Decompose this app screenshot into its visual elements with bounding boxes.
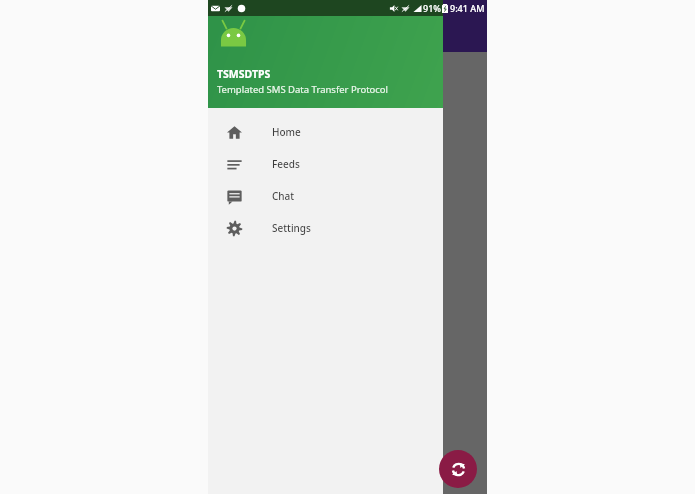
staticText: TSMSDTPS — [217, 67, 271, 81]
staticText: Settings — [272, 221, 311, 235]
staticText: 91% — [423, 2, 441, 14]
staticText: Home — [272, 125, 301, 139]
button[interactable]: Feeds — [208, 148, 443, 180]
staticText: 9:41 AM — [450, 2, 485, 14]
button[interactable]: Chat — [208, 180, 443, 212]
staticText: Chat — [272, 189, 295, 203]
button[interactable]: Refresh — [439, 450, 477, 488]
button[interactable]: Home — [208, 116, 443, 148]
staticText: Templated SMS Data Transfer Protocol — [217, 83, 389, 96]
staticText: Feeds — [272, 157, 300, 171]
button[interactable]: Settings — [208, 212, 443, 244]
